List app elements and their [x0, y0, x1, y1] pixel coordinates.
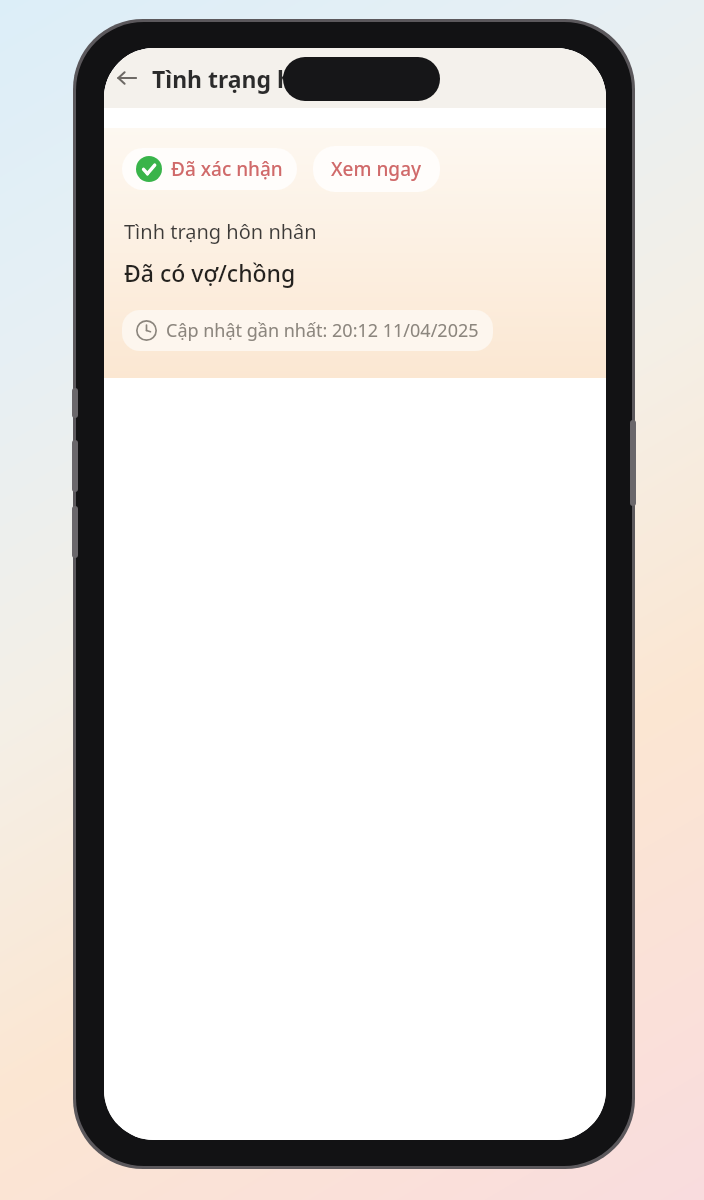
staticText: Tình trạng hôn nhân	[124, 218, 317, 245]
button[interactable]: Xem ngay	[313, 146, 440, 192]
staticText: Xem ngay	[331, 156, 422, 182]
staticText: Đã có vợ/chồng	[124, 257, 296, 288]
button[interactable]: Back	[104, 55, 150, 101]
staticText: Tình trạng hôn nhân	[152, 63, 386, 94]
staticText: Đã xác nhận	[171, 156, 283, 182]
staticText: Cập nhật gần nhất: 20:12 11/04/2025	[166, 318, 479, 343]
button[interactable]: Đã xác nhận	[122, 148, 297, 190]
